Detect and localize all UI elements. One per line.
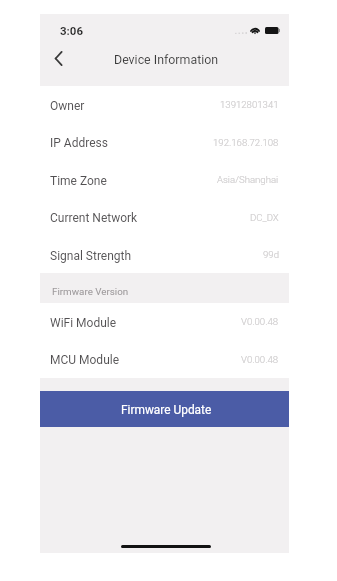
button[interactable]: Time Zone: [40, 161, 289, 198]
staticText: IP Address: [50, 136, 108, 150]
button[interactable]: Signal Strength: [40, 236, 289, 273]
staticText: DC_DX: [250, 212, 279, 223]
staticText: Time Zone: [50, 174, 107, 188]
staticText: Firmware Version: [52, 286, 129, 297]
button[interactable]: Firmware Update: [40, 391, 289, 427]
staticText: 192.168.72.108: [213, 137, 279, 148]
staticText: V0.00.48: [241, 354, 279, 365]
button[interactable]: WiFi Module: [40, 303, 289, 340]
button[interactable]: Back: [41, 45, 75, 72]
staticText: 99d: [263, 249, 279, 260]
staticText: Device Information: [114, 52, 219, 67]
staticText: 3:06: [60, 24, 84, 37]
staticText: V0.00.48: [241, 316, 279, 327]
staticText: MCU Module: [50, 353, 120, 367]
button[interactable]: IP Address: [40, 123, 289, 161]
button[interactable]: Owner: [40, 86, 289, 123]
staticText: Signal Strength: [50, 249, 132, 263]
staticText: Current Network: [50, 211, 138, 225]
button[interactable]: MCU Module: [40, 340, 289, 378]
staticText: Owner: [50, 99, 85, 113]
button[interactable]: Current Network: [40, 198, 289, 236]
staticText: WiFi Module: [50, 316, 117, 330]
staticText: Asia/Shanghai: [217, 174, 279, 185]
staticText: 13912801341: [220, 99, 279, 110]
staticText: Firmware Update: [121, 403, 212, 417]
